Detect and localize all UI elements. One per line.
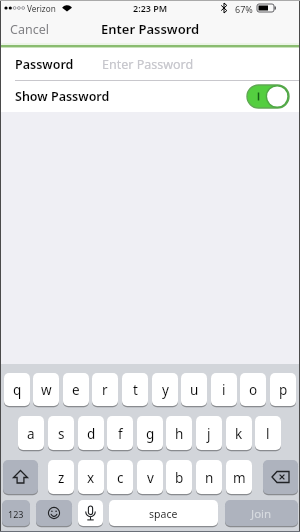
staticText: b bbox=[175, 469, 184, 487]
staticText: r bbox=[102, 381, 108, 399]
button[interactable]: Join bbox=[225, 500, 298, 527]
staticText: p bbox=[279, 381, 288, 399]
button[interactable]: Cancel bbox=[10, 21, 49, 38]
staticText: Verizon bbox=[27, 3, 56, 14]
button[interactable]: w bbox=[33, 373, 59, 407]
staticText: Show Password bbox=[15, 88, 110, 105]
staticText: d bbox=[87, 425, 96, 443]
button[interactable] bbox=[3, 460, 38, 495]
button[interactable]: o bbox=[240, 373, 266, 407]
staticText: 123 bbox=[8, 508, 24, 520]
staticText: Join bbox=[251, 506, 272, 522]
button[interactable]: e bbox=[63, 373, 89, 407]
staticText: z bbox=[58, 469, 65, 487]
staticText: x bbox=[87, 469, 95, 487]
button[interactable]: a bbox=[18, 416, 44, 451]
staticText: o bbox=[249, 381, 258, 399]
button[interactable]: q bbox=[4, 373, 30, 407]
button[interactable]: d bbox=[78, 416, 104, 451]
staticText: e bbox=[72, 381, 80, 399]
staticText: y bbox=[162, 381, 169, 399]
button[interactable]: j bbox=[196, 416, 222, 451]
button[interactable]: g bbox=[137, 416, 163, 451]
button[interactable]: p bbox=[270, 373, 296, 407]
staticText: 2:23 PM bbox=[133, 2, 168, 14]
button[interactable] bbox=[36, 500, 72, 527]
staticText: k bbox=[235, 425, 243, 443]
staticText: w bbox=[41, 381, 52, 399]
button[interactable]: i bbox=[211, 373, 237, 407]
staticText: h bbox=[175, 425, 184, 443]
staticText: m bbox=[233, 469, 246, 487]
button[interactable]: r bbox=[92, 373, 118, 407]
button[interactable]: v bbox=[137, 460, 163, 495]
button[interactable]: f bbox=[107, 416, 133, 451]
staticText: g bbox=[146, 425, 155, 443]
staticText: i bbox=[222, 381, 226, 399]
button[interactable]: x bbox=[78, 460, 104, 495]
staticText: Password bbox=[15, 56, 74, 73]
staticText: Cancel bbox=[10, 21, 49, 38]
button[interactable]: space bbox=[109, 500, 218, 527]
button[interactable]: Enter Password bbox=[102, 56, 194, 73]
staticText: s bbox=[58, 425, 65, 443]
staticText: t bbox=[133, 381, 138, 399]
staticText: Enter Password bbox=[101, 20, 200, 38]
staticText: v bbox=[147, 469, 154, 487]
button[interactable]: l bbox=[255, 416, 281, 451]
button[interactable]: s bbox=[48, 416, 74, 451]
button[interactable]: k bbox=[226, 416, 252, 451]
staticText: l bbox=[266, 425, 270, 443]
button[interactable]: 123 bbox=[2, 500, 30, 527]
button[interactable]: y bbox=[152, 373, 178, 407]
button[interactable]: z bbox=[48, 460, 74, 495]
staticText: f bbox=[118, 425, 123, 443]
button[interactable]: c bbox=[107, 460, 133, 495]
button[interactable] bbox=[263, 460, 298, 495]
button[interactable]: t bbox=[122, 373, 148, 407]
staticText: a bbox=[27, 425, 35, 443]
button[interactable]: u bbox=[181, 373, 207, 407]
button[interactable]: m bbox=[226, 460, 252, 495]
button[interactable]: h bbox=[166, 416, 192, 451]
staticText: 67% bbox=[235, 3, 253, 15]
staticText: Enter Password bbox=[102, 56, 194, 73]
button[interactable]: n bbox=[196, 460, 222, 495]
staticText: n bbox=[205, 469, 214, 487]
staticText: c bbox=[117, 469, 124, 487]
staticText: u bbox=[190, 381, 199, 399]
button[interactable]: b bbox=[166, 460, 192, 495]
staticText: space bbox=[149, 507, 178, 521]
button[interactable] bbox=[78, 500, 103, 527]
staticText: j bbox=[207, 425, 211, 443]
button[interactable] bbox=[247, 85, 289, 108]
staticText: q bbox=[13, 381, 22, 399]
